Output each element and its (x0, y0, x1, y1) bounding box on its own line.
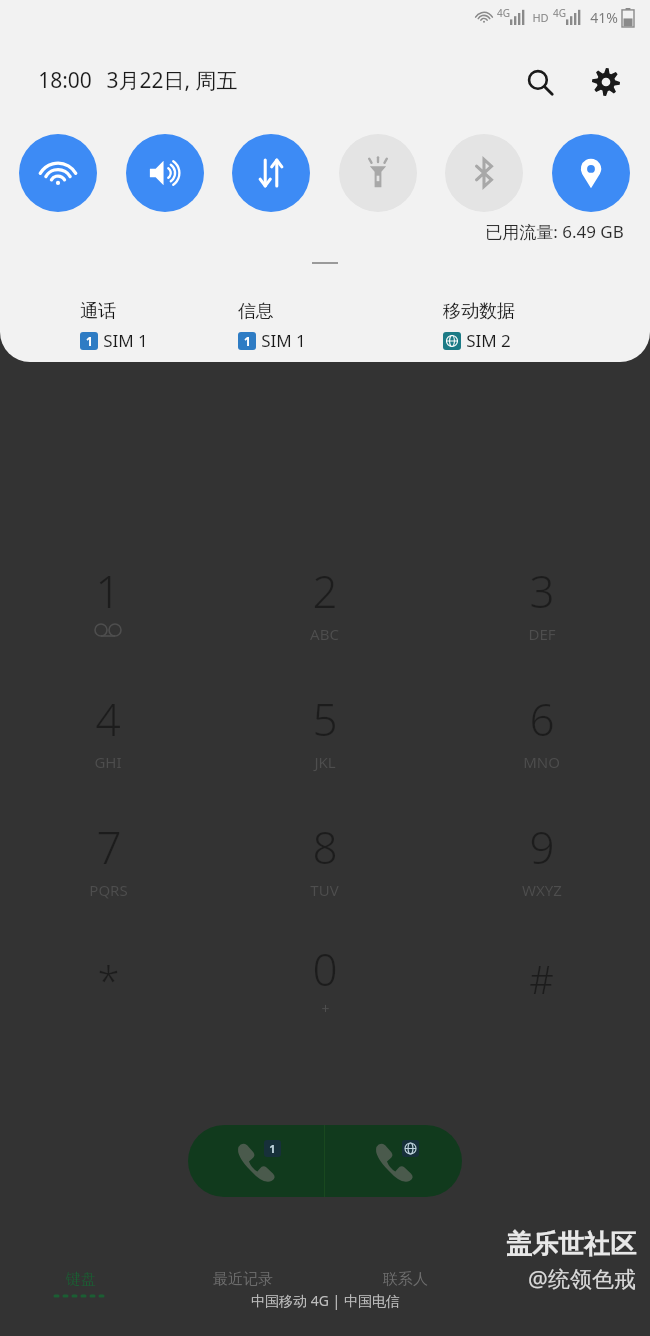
staticText: + (321, 999, 330, 1018)
button[interactable]: Location (552, 134, 630, 212)
button[interactable]: Call with SIM 2 (325, 1125, 462, 1197)
staticText: 5 (312, 689, 338, 749)
staticText: 4G (497, 6, 510, 20)
staticText: # (529, 953, 554, 1005)
staticText: MNO (523, 752, 560, 772)
staticText: SIM 1 (103, 329, 148, 352)
staticText: * (97, 953, 120, 1007)
staticText: 1 (244, 333, 251, 349)
staticText: 3月22日, 周五 (106, 66, 238, 95)
staticText: WXYZ (522, 880, 562, 900)
staticText: 1 (269, 1141, 276, 1156)
button[interactable]: 键盘 (0, 1270, 162, 1298)
staticText: HD (532, 10, 549, 25)
staticText: SIM 2 (466, 329, 511, 352)
staticText: 移动数据 (443, 300, 515, 323)
staticText: 盖乐世社区 (506, 1228, 636, 1261)
staticText: 4G (553, 6, 566, 20)
staticText: 3 (529, 561, 555, 621)
staticText: 0 (312, 939, 338, 999)
staticText: 6 (529, 689, 555, 749)
staticText: 1 (95, 561, 121, 621)
button[interactable]: Bluetooth (445, 134, 523, 212)
staticText: 最近记录 (213, 1270, 273, 1289)
staticText: 已用流量: 6.49 GB (485, 220, 624, 243)
staticText: PQRS (89, 880, 128, 900)
staticText: 18:00 (38, 66, 92, 95)
staticText: 7 (96, 817, 122, 877)
button[interactable]: Search (518, 60, 562, 104)
button[interactable]: Sound (126, 134, 204, 212)
button[interactable]: Call with SIM 1 (188, 1125, 324, 1197)
staticText: 4 (95, 689, 121, 749)
staticText: GHI (94, 752, 122, 772)
staticText: 41% (590, 8, 618, 27)
button[interactable]: 信息 (238, 300, 433, 352)
staticText: JKL (314, 752, 336, 772)
staticText: 2 (312, 561, 338, 621)
button[interactable]: 移动数据 (443, 300, 650, 352)
staticText: SIM 1 (261, 329, 306, 352)
button[interactable]: Mobile data (232, 134, 310, 212)
button[interactable]: Wi-Fi (19, 134, 97, 212)
button[interactable]: Flashlight (339, 134, 417, 212)
button[interactable]: 通话 (80, 300, 216, 352)
button[interactable]: 最近记录 (162, 1270, 324, 1289)
staticText: TUV (310, 880, 339, 900)
staticText: 8 (312, 817, 338, 877)
staticText: 联系人 (383, 1270, 428, 1289)
button[interactable]: Settings (584, 60, 628, 104)
staticText: 信息 (238, 300, 274, 323)
staticText: 9 (529, 817, 555, 877)
staticText: @统领色戒 (528, 1263, 636, 1293)
button[interactable]: 联系人 (324, 1270, 487, 1289)
staticText: ABC (310, 624, 339, 644)
staticText: 通话 (80, 300, 116, 323)
staticText: 1 (86, 333, 93, 349)
staticText: DEF (528, 624, 556, 644)
staticText: 键盘 (66, 1270, 96, 1289)
staticText: 中国移动 4G | 中国电信 (251, 1291, 400, 1310)
